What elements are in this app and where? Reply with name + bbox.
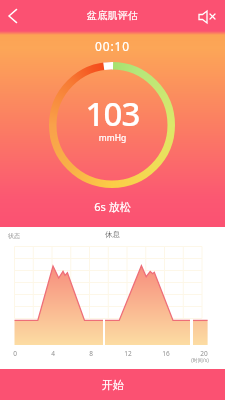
- staticText: 盆底肌评估: [0, 9, 225, 22]
- staticText: 12: [118, 349, 138, 361]
- staticText: 00:10: [0, 38, 225, 54]
- button[interactable]: 开始: [0, 369, 225, 400]
- staticText: mmHg: [0, 132, 225, 144]
- staticText: 16: [156, 349, 176, 361]
- staticText: 103: [0, 91, 225, 136]
- staticText: 8: [81, 349, 101, 361]
- staticText: 6s 放松: [0, 199, 225, 214]
- staticText: 0: [5, 349, 25, 361]
- staticText: 状态: [8, 232, 20, 240]
- staticText: 休息: [0, 230, 225, 239]
- staticText: 开始: [102, 378, 124, 392]
- staticText: 4: [43, 349, 63, 361]
- staticText: (时间/s): [185, 357, 215, 367]
- button[interactable]: Mute sound: [193, 0, 225, 32]
- button[interactable]: Back: [0, 0, 32, 32]
- staticText: 20: [194, 349, 214, 361]
